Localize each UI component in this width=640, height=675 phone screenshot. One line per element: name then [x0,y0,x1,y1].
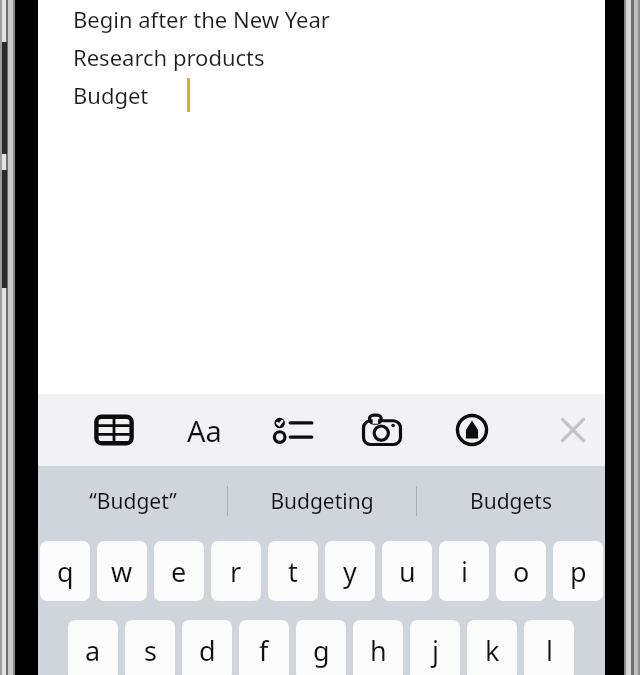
button[interactable]: l [524,620,574,675]
staticText: a [85,632,101,669]
staticText: p [570,553,587,590]
staticText: Research products [73,42,265,72]
button[interactable]: u [382,541,432,601]
staticText: Aa [187,411,222,450]
button[interactable]: Budgets [417,466,605,536]
staticText: w [111,553,133,590]
staticText: s [144,632,157,669]
staticText: d [199,632,216,669]
staticText: i [461,553,468,590]
staticText: t [288,553,298,590]
button[interactable]: q [40,541,90,601]
staticText: Begin after the New Year [73,4,330,34]
button[interactable]: Table [76,394,152,466]
button[interactable]: k [467,620,517,675]
button[interactable]: Dismiss [535,394,611,466]
staticText: j [432,632,439,669]
button[interactable]: d [182,620,232,675]
button[interactable]: a [68,620,118,675]
staticText: Budget [73,80,149,110]
button[interactable]: h [353,620,403,675]
button[interactable]: o [496,541,546,601]
button[interactable]: w [97,541,147,601]
button[interactable]: f [239,620,289,675]
staticText: “Budget” [89,487,177,516]
staticText: l [546,632,553,669]
button[interactable]: Checklist [254,394,330,466]
staticText: r [230,553,242,590]
button[interactable]: r [211,541,261,601]
button[interactable]: “Budget” [38,466,227,536]
button[interactable]: Text format [166,394,242,466]
staticText: k [485,632,500,669]
staticText: g [313,632,330,669]
button[interactable]: s [125,620,175,675]
staticText: Budgets [470,487,552,516]
button[interactable]: y [325,541,375,601]
button[interactable]: Budgeting [228,466,416,536]
button[interactable]: Camera [344,394,420,466]
staticText: e [171,553,187,590]
button[interactable]: t [268,541,318,601]
button[interactable]: e [154,541,204,601]
button[interactable]: Markup [434,394,510,466]
button[interactable]: i [439,541,489,601]
staticText: q [57,553,74,590]
staticText: y [343,553,357,590]
staticText: h [370,632,387,669]
staticText: u [399,553,416,590]
button[interactable]: g [296,620,346,675]
button[interactable]: p [553,541,603,601]
staticText: o [513,553,530,590]
staticText: Budgeting [270,487,374,516]
staticText: f [259,632,269,669]
button[interactable]: j [410,620,460,675]
